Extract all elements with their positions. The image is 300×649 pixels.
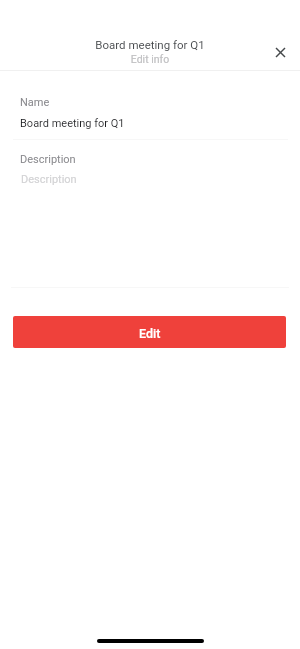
button[interactable]: Edit: [13, 316, 286, 348]
staticText: Edit: [139, 326, 161, 341]
button[interactable]: Name: [13, 88, 288, 140]
staticText: Board meeting for Q1: [0, 38, 300, 51]
staticText: Board meeting for Q1: [20, 117, 125, 130]
staticText: Name: [20, 96, 50, 109]
staticText: Edit info: [0, 53, 300, 65]
button[interactable]: Description: [13, 145, 288, 190]
button[interactable]: Close: [268, 40, 292, 64]
staticText: Description: [20, 153, 76, 166]
staticText: Description: [21, 173, 77, 186]
